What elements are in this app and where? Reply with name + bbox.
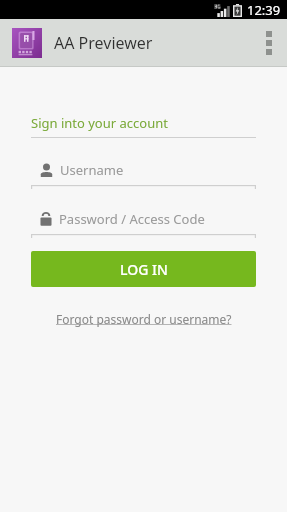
button[interactable]: LOG IN — [31, 251, 256, 287]
staticText: LOG IN — [120, 260, 168, 279]
staticText: Sign into your account — [31, 114, 168, 132]
staticText: Forgot password or username? — [56, 311, 232, 327]
staticText: AA Previewer — [54, 32, 153, 54]
staticText: Username — [60, 161, 124, 179]
button[interactable]: More options — [250, 19, 287, 66]
button[interactable]: Password / Access Code — [31, 207, 256, 239]
button[interactable]: Username — [31, 158, 256, 190]
button[interactable]: Forgot password or username? — [52, 309, 236, 329]
staticText: Password / Access Code — [59, 210, 205, 228]
staticText: 12:39 — [247, 1, 281, 19]
